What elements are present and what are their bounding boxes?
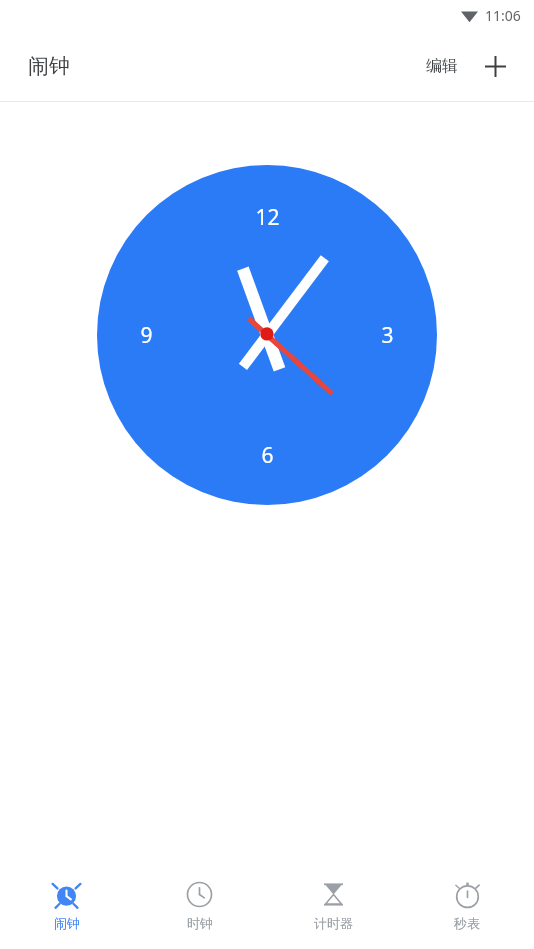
button[interactable]: 秒表: [400, 863, 534, 949]
staticText: 6: [261, 441, 274, 470]
staticText: 编辑: [426, 56, 458, 76]
button[interactable]: 计时器: [266, 863, 400, 949]
staticText: 计时器: [314, 915, 353, 931]
button[interactable]: 闹钟: [0, 863, 133, 949]
button[interactable]: 时钟: [133, 863, 266, 949]
button[interactable]: Add alarm: [476, 47, 514, 85]
staticText: 11:06: [485, 6, 521, 25]
staticText: 12: [255, 203, 280, 232]
staticText: 秒表: [454, 915, 480, 931]
staticText: 3: [381, 321, 394, 350]
staticText: 9: [140, 321, 153, 350]
staticText: 闹钟: [28, 53, 70, 79]
button[interactable]: 编辑: [418, 48, 466, 84]
staticText: 时钟: [187, 915, 213, 931]
staticText: 闹钟: [54, 915, 80, 931]
